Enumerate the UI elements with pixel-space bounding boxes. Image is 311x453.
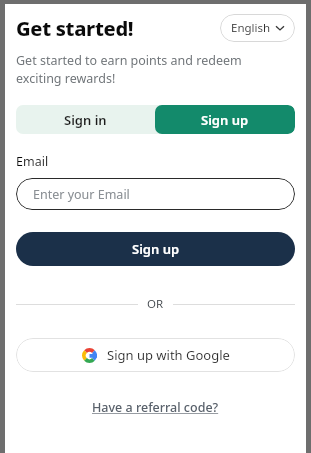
staticText: OR [147,296,164,312]
staticText: Have a referral code? [92,399,219,416]
button[interactable]: English [220,14,295,42]
staticText: Get started to earn points and redeem ex… [16,52,242,87]
staticText: Sign up [132,240,180,258]
staticText: Enter your Email [33,186,130,203]
staticText: Sign in [64,111,107,129]
staticText: English [231,20,271,36]
staticText: Email [16,153,49,170]
button[interactable]: Sign up [155,105,295,134]
staticText: Get started! [16,15,134,42]
button[interactable]: Sign in [16,105,155,134]
staticText: Sign up [201,111,249,129]
button[interactable]: Sign up with Google [16,338,295,372]
button[interactable]: Enter your Email [16,178,295,210]
staticText: Sign up with Google [107,346,230,364]
button[interactable]: Have a referral code? [86,396,225,419]
button[interactable]: Sign up [16,232,295,266]
